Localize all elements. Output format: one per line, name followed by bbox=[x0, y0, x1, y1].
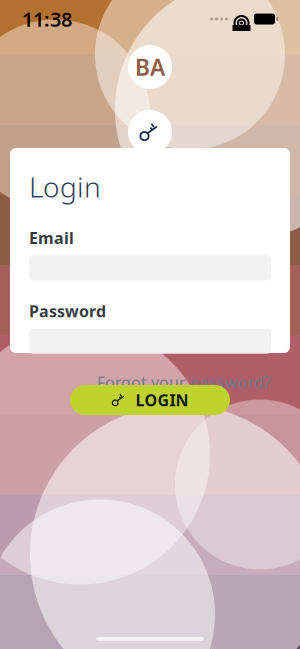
button[interactable]: Forgot your password? bbox=[97, 368, 271, 397]
staticText: Email bbox=[29, 227, 74, 248]
staticText: Password bbox=[29, 300, 106, 322]
staticText: Login bbox=[29, 168, 101, 205]
staticText: LOGIN bbox=[135, 389, 188, 411]
staticText: Forgot your password? bbox=[97, 372, 271, 393]
staticText: BA bbox=[135, 52, 165, 82]
staticText: 11:38 bbox=[22, 6, 72, 32]
button[interactable]: LOGIN bbox=[70, 385, 230, 415]
